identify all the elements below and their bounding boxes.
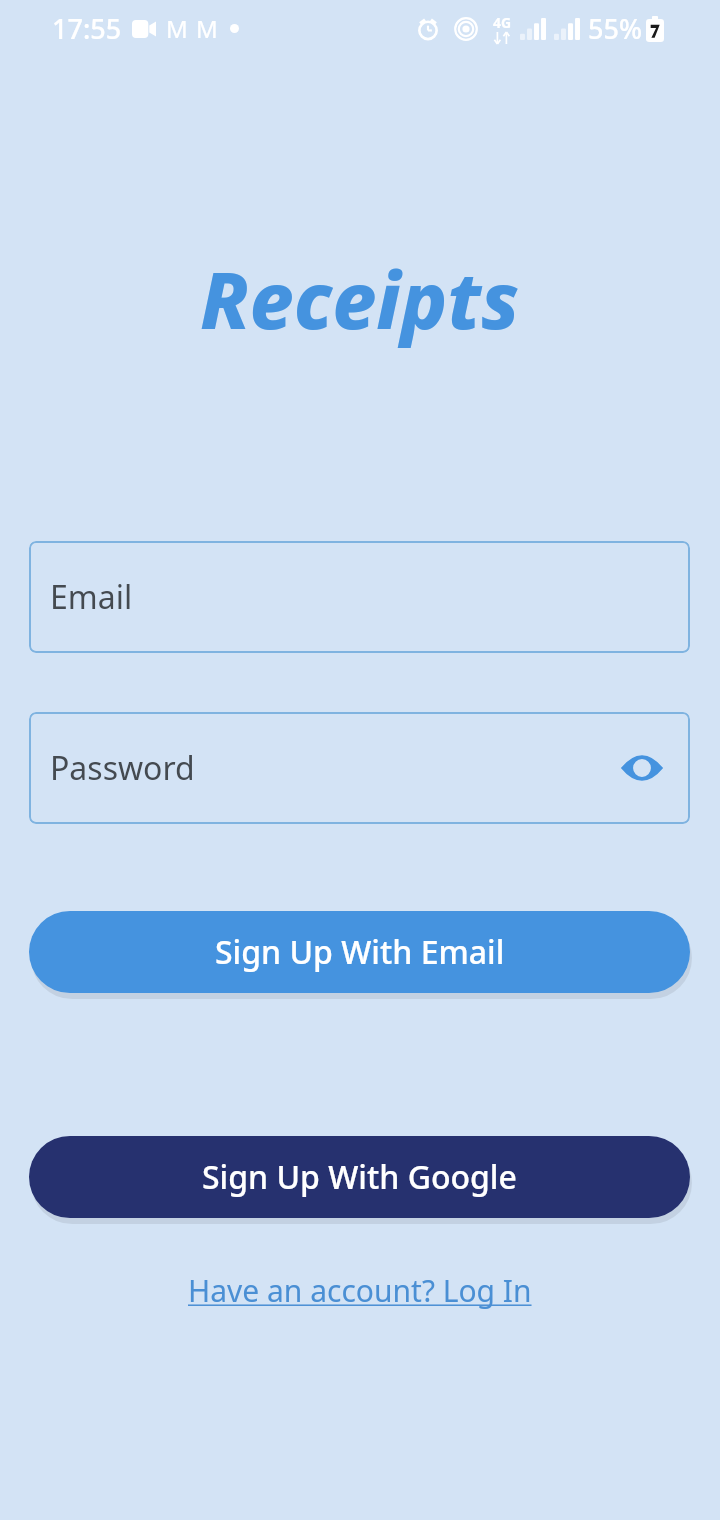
staticText: 17:55 (52, 10, 122, 47)
button[interactable]: Show password (616, 742, 668, 794)
staticText: 55% (588, 10, 642, 47)
staticText: M (196, 12, 218, 45)
button[interactable]: Password (29, 712, 690, 824)
button[interactable]: Sign Up With Email (29, 911, 690, 993)
staticText: M (166, 12, 188, 45)
staticText: Password (50, 746, 195, 790)
staticText: Email (50, 575, 133, 619)
button[interactable]: Have an account? Log In (180, 1266, 540, 1315)
staticText: Have an account? Log In (188, 1270, 532, 1311)
staticText: Sign Up With Email (215, 930, 505, 974)
button[interactable]: Email (29, 541, 690, 653)
button[interactable]: Sign Up With Google (29, 1136, 690, 1218)
staticText: Sign Up With Google (202, 1155, 517, 1199)
staticText: Receipts (200, 246, 520, 352)
staticText: 4G (493, 13, 512, 32)
